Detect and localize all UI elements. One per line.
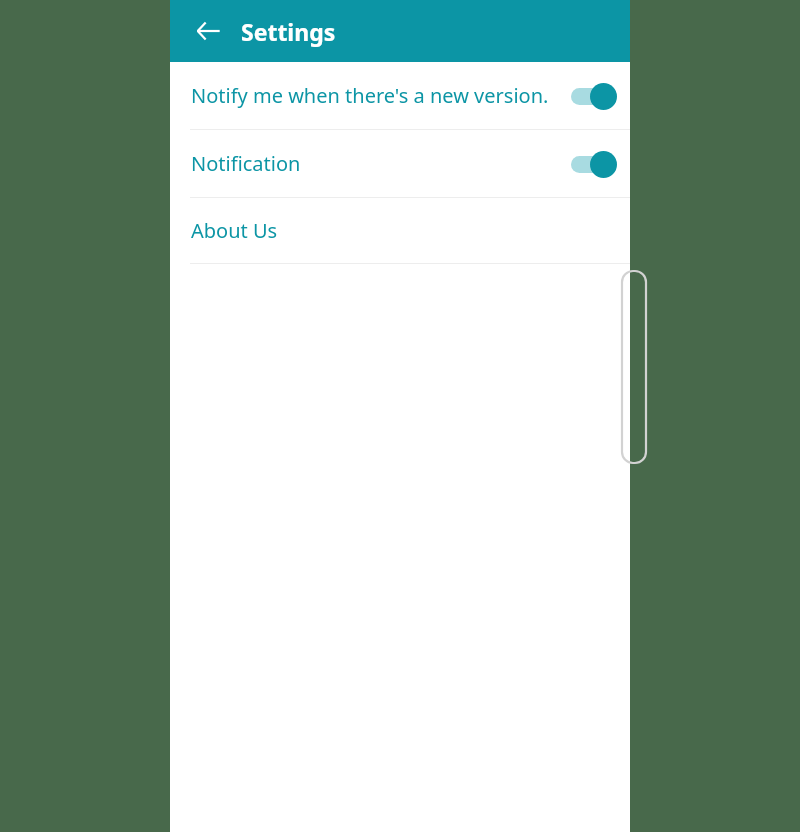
button[interactable]: Toggle setting: [567, 147, 619, 181]
button[interactable]: Notification: [170, 130, 630, 197]
staticText: Notify me when there's a new version.: [191, 82, 549, 109]
button[interactable]: Toggle setting: [567, 79, 619, 113]
staticText: Notification: [191, 150, 301, 177]
staticText: About Us: [191, 217, 278, 244]
button[interactable]: Notify me when there's a new version.: [170, 62, 630, 129]
staticText: Settings: [241, 16, 336, 47]
button[interactable]: About Us: [170, 198, 630, 263]
button[interactable]: Back: [191, 14, 225, 48]
